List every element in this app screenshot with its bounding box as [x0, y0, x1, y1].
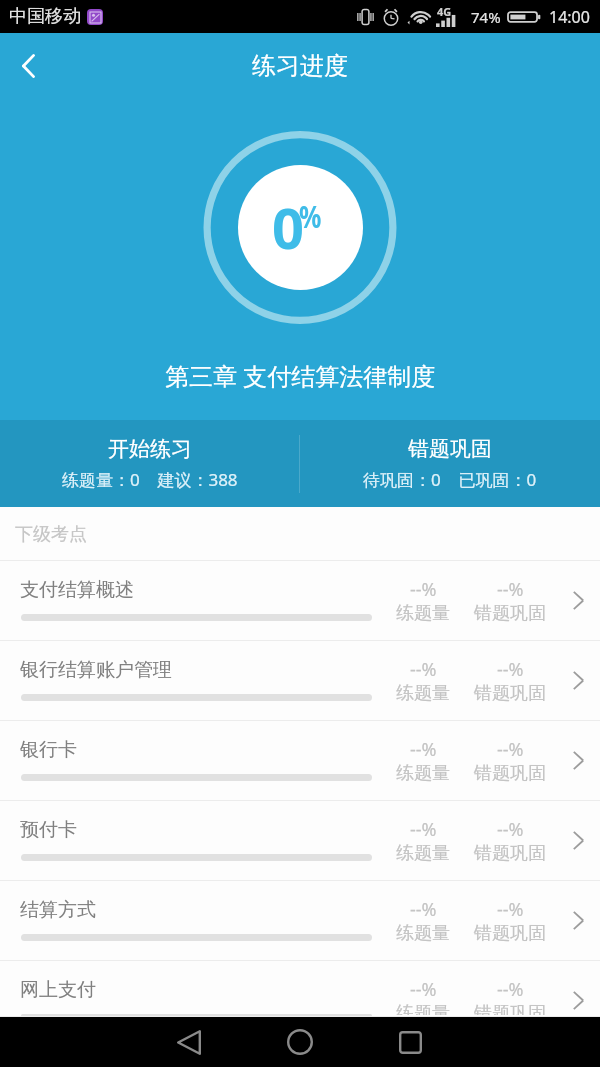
button[interactable]: Back [155, 1017, 222, 1067]
staticText: --% [410, 737, 437, 762]
staticText: 4G [437, 4, 452, 19]
button[interactable]: 支付结算概述 [0, 561, 600, 641]
staticText: 错题巩固 [474, 922, 546, 945]
button[interactable]: 错题巩固 [300, 420, 600, 507]
button[interactable]: 银行卡 [0, 721, 600, 801]
staticText: 错题巩固 [474, 842, 546, 865]
staticText: 错题巩固 [474, 1002, 546, 1015]
staticText: 错题巩固 [408, 436, 492, 462]
staticText: 14:00 [549, 6, 590, 28]
staticText: 银行卡 [20, 738, 77, 762]
staticText: 练题量：0 建议：388 [62, 468, 238, 491]
staticText: 练题量 [396, 682, 450, 705]
staticText: 错题巩固 [474, 682, 546, 705]
staticText: 练题量 [396, 602, 450, 625]
staticText: --% [497, 817, 524, 842]
button[interactable]: Back [5, 38, 52, 94]
staticText: 网上支付 [20, 978, 96, 1002]
staticText: --% [410, 657, 437, 682]
button[interactable]: Home [266, 1017, 333, 1067]
staticText: 练题量 [396, 762, 450, 785]
staticText: --% [497, 977, 524, 1002]
button[interactable]: Recent apps [377, 1017, 444, 1067]
staticText: --% [497, 737, 524, 762]
staticText: --% [497, 897, 524, 922]
button[interactable]: 开始练习 [0, 420, 299, 507]
button[interactable]: 结算方式 [0, 881, 600, 961]
staticText: 错题巩固 [474, 762, 546, 785]
staticText: 练题量 [396, 842, 450, 865]
staticText: --% [410, 977, 437, 1002]
staticText: 0 [272, 189, 305, 265]
staticText: --% [410, 577, 437, 602]
staticText: % [299, 195, 321, 237]
staticText: 错题巩固 [474, 602, 546, 625]
staticText: 结算方式 [20, 898, 96, 922]
staticText: 待巩固：0 已巩固：0 [363, 468, 537, 491]
staticText: --% [497, 657, 524, 682]
staticText: 中国移动 [9, 5, 81, 28]
staticText: 预付卡 [20, 818, 77, 842]
staticText: --% [497, 577, 524, 602]
staticText: 开始练习 [108, 436, 192, 462]
staticText: 银行结算账户管理 [20, 658, 172, 682]
staticText: 下级考点 [15, 523, 87, 546]
staticText: 第三章 支付结算法律制度 [165, 359, 436, 392]
staticText: 练习进度 [252, 51, 348, 81]
staticText: 练题量 [396, 1002, 450, 1015]
staticText: --% [410, 897, 437, 922]
staticText: 练题量 [396, 922, 450, 945]
staticText: --% [410, 817, 437, 842]
button[interactable]: 银行结算账户管理 [0, 641, 600, 721]
button[interactable]: 网上支付 [0, 961, 600, 1017]
staticText: 支付结算概述 [20, 578, 134, 602]
button[interactable]: 预付卡 [0, 801, 600, 881]
staticText: 74% [471, 7, 501, 27]
